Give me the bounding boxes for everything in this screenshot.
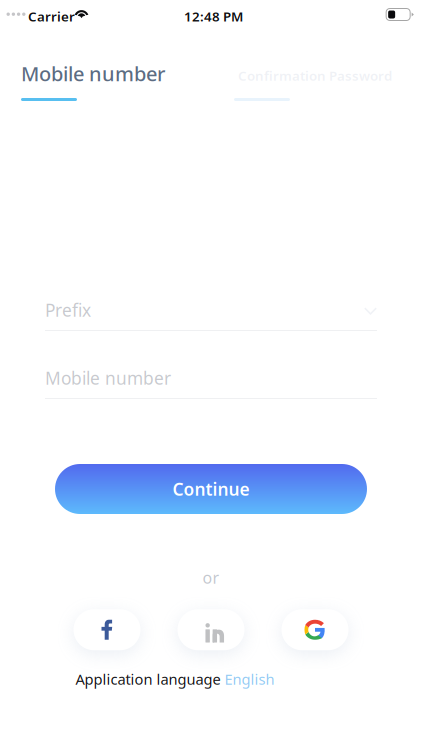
staticText: Mobile number (21, 60, 165, 87)
button[interactable]: Sign in with LinkedIn (177, 609, 244, 650)
staticText: Application language (75, 669, 220, 689)
staticText: Carrier (28, 7, 75, 25)
staticText: Mobile number (45, 366, 171, 389)
button[interactable]: Sign in with Facebook (73, 609, 140, 650)
staticText: Confirmation Password (238, 67, 392, 84)
button[interactable]: Mobile number (21, 65, 211, 101)
staticText: English (224, 669, 274, 689)
staticText: Prefix (45, 298, 91, 321)
button[interactable]: Sign in with Google (281, 609, 348, 650)
button[interactable]: Confirmation Password (234, 65, 422, 101)
button[interactable]: English (224, 669, 274, 689)
staticText: or (202, 567, 219, 588)
button[interactable]: Continue (55, 464, 367, 514)
staticText: 12:48 PM (184, 7, 243, 25)
staticText: Continue (172, 477, 249, 500)
